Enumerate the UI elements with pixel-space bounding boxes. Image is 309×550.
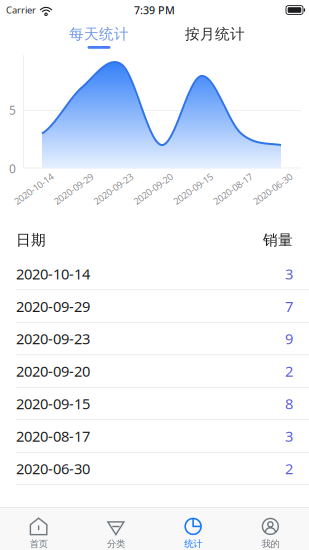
- button[interactable]: 2020-09-23: [0, 323, 309, 355]
- staticText: 0: [9, 160, 16, 176]
- button[interactable]: 每天统计: [59, 20, 139, 53]
- button[interactable]: 按月统计: [175, 20, 255, 53]
- staticText: 首页: [30, 538, 48, 550]
- staticText: 2020-09-15: [171, 187, 217, 199]
- staticText: 2020-10-14: [16, 264, 90, 283]
- staticText: 2: [285, 361, 293, 381]
- staticText: 日期: [16, 231, 46, 249]
- staticText: 销量: [263, 231, 293, 249]
- staticText: 3: [285, 426, 293, 446]
- staticText: 2020-10-14: [12, 187, 58, 199]
- button[interactable]: 2020-10-14: [0, 258, 309, 290]
- button[interactable]: 我的: [232, 508, 309, 550]
- button[interactable]: 2020-09-29: [0, 290, 309, 323]
- button[interactable]: 2020-09-20: [0, 355, 309, 388]
- button[interactable]: 分类: [77, 508, 154, 550]
- staticText: 我的: [261, 538, 279, 550]
- staticText: 7:39 PM: [134, 3, 175, 17]
- staticText: 2020-08-17: [211, 187, 257, 199]
- staticText: 2020-09-23: [16, 329, 90, 348]
- staticText: 7: [285, 296, 293, 316]
- staticText: 2: [285, 459, 293, 478]
- staticText: 2020-06-30: [16, 459, 90, 478]
- staticText: 2020-09-29: [16, 296, 90, 316]
- staticText: 2020-06-30: [251, 187, 297, 199]
- button[interactable]: 2020-09-15: [0, 388, 309, 420]
- staticText: 3: [285, 264, 293, 283]
- staticText: 8: [285, 394, 293, 413]
- button[interactable]: 2020-06-30: [0, 453, 309, 485]
- staticText: 统计: [184, 538, 202, 550]
- staticText: 9: [285, 329, 293, 348]
- staticText: 2020-09-20: [131, 187, 177, 199]
- staticText: 2020-09-23: [92, 187, 138, 199]
- staticText: 分类: [107, 538, 125, 550]
- staticText: 按月统计: [185, 25, 245, 43]
- button[interactable]: 2020-08-17: [0, 420, 309, 453]
- button[interactable]: 统计: [154, 508, 232, 550]
- staticText: 2020-09-29: [52, 187, 98, 199]
- button[interactable]: 首页: [0, 508, 77, 550]
- staticText: 2020-08-17: [16, 426, 90, 446]
- staticText: 2020-09-15: [16, 394, 90, 413]
- staticText: 每天统计: [69, 25, 129, 43]
- staticText: 5: [9, 102, 16, 118]
- staticText: 2020-09-20: [16, 361, 90, 381]
- staticText: Carrier: [6, 4, 36, 16]
